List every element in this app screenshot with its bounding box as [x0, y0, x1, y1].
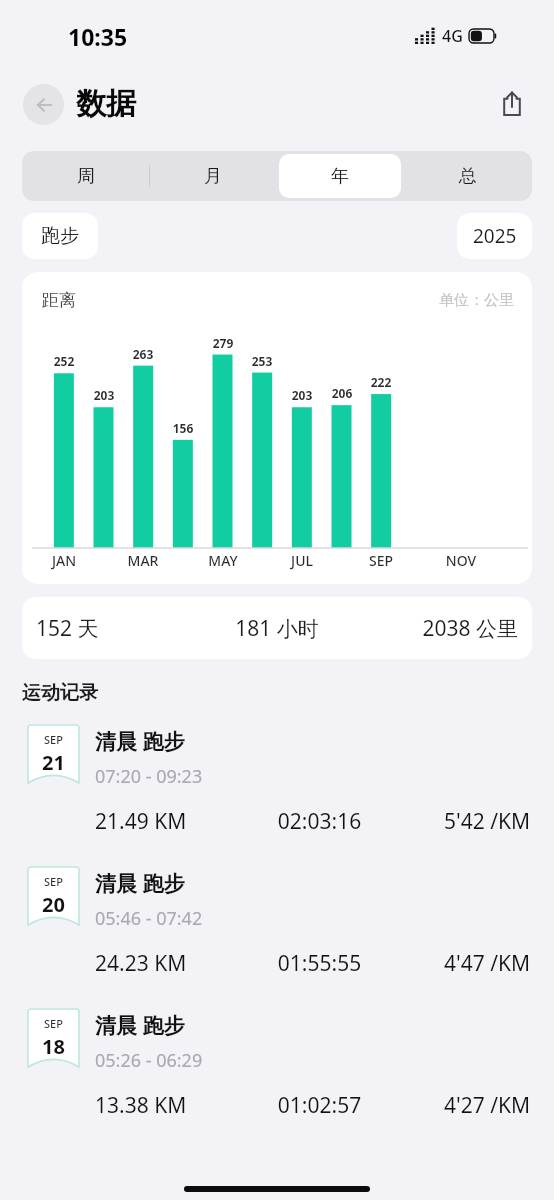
staticText: 月	[204, 165, 222, 188]
staticText: 运动记录	[22, 681, 98, 705]
staticText: 4'47 /KM	[392, 949, 530, 978]
staticText: 05:46 - 07:42	[95, 906, 203, 931]
button[interactable]: SEP	[0, 1009, 554, 1120]
staticText: 总	[459, 165, 477, 188]
staticText: 05:26 - 06:29	[95, 1048, 203, 1073]
staticText: 18	[42, 1033, 65, 1060]
staticText: 2038 公里	[362, 614, 518, 643]
staticText: 152 天	[36, 614, 192, 643]
staticText: SEP	[44, 1016, 63, 1031]
button[interactable]: Share	[490, 82, 534, 126]
staticText: 周	[77, 165, 95, 188]
staticText: 20	[42, 891, 65, 918]
button[interactable]: Back	[23, 84, 64, 125]
staticText: 13.38 KM	[95, 1091, 247, 1120]
button[interactable]: 年	[279, 154, 401, 198]
button[interactable]: SEP	[0, 867, 554, 978]
button[interactable]: 月	[152, 154, 273, 198]
button[interactable]: 跑步	[22, 213, 98, 259]
staticText: 203	[90, 387, 118, 403]
staticText: 01:02:57	[247, 1091, 392, 1120]
staticText: SEP	[44, 732, 63, 747]
staticText: 206	[328, 385, 356, 401]
staticText: 279	[209, 335, 237, 351]
staticText: 02:03:16	[247, 807, 392, 836]
button[interactable]: 总	[407, 154, 529, 198]
staticText: 203	[288, 387, 316, 403]
staticText: SEP	[359, 551, 403, 570]
staticText: MAR	[121, 551, 165, 570]
staticText: JAN	[42, 551, 86, 570]
staticText: 年	[331, 165, 349, 188]
staticText: 222	[367, 374, 395, 390]
staticText: 07:20 - 09:23	[95, 764, 203, 789]
staticText: 21	[42, 749, 65, 776]
staticText: 263	[129, 346, 157, 362]
button[interactable]: SEP	[0, 725, 554, 836]
staticText: JUL	[280, 551, 324, 570]
staticText: 数据	[76, 85, 136, 123]
staticText: 清晨 跑步	[95, 1011, 185, 1040]
staticText: 10:35	[68, 21, 128, 52]
staticText: 01:55:55	[247, 949, 392, 978]
button[interactable]: 2025	[457, 213, 532, 259]
staticText: 21.49 KM	[95, 807, 247, 836]
staticText: 156	[169, 420, 197, 436]
staticText: 4'27 /KM	[392, 1091, 530, 1120]
staticText: MAY	[201, 551, 245, 570]
staticText: 跑步	[41, 224, 79, 248]
staticText: SEP	[44, 874, 63, 889]
staticText: 24.23 KM	[95, 949, 247, 978]
staticText: 5'42 /KM	[392, 807, 530, 836]
staticText: 清晨 跑步	[95, 869, 185, 898]
staticText: 252	[50, 353, 78, 369]
staticText: 清晨 跑步	[95, 727, 185, 756]
staticText: 181 小时	[192, 614, 362, 643]
staticText: 253	[248, 353, 276, 369]
staticText: 4G	[442, 25, 463, 47]
button[interactable]: 152 天	[22, 597, 532, 659]
staticText: NOV	[439, 551, 483, 570]
staticText: 2025	[473, 223, 517, 249]
button[interactable]: 周	[25, 154, 146, 198]
staticText: 距离	[42, 290, 76, 311]
staticText: 单位：公里	[439, 291, 514, 310]
